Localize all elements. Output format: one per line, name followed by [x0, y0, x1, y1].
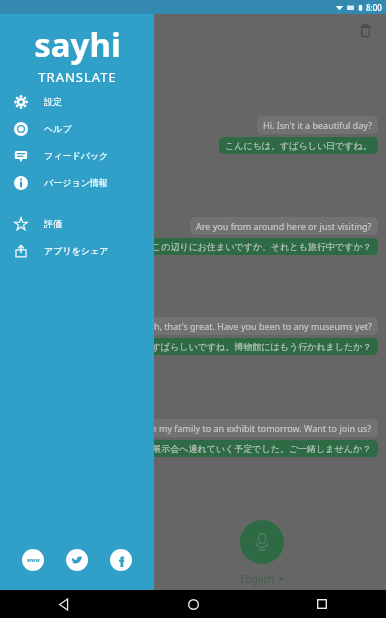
staticText: 族を展示会へ連れていく予定でした。ご一緒しませんか？	[134, 443, 372, 454]
staticText: 8:00	[366, 2, 382, 13]
button[interactable]: Are you from around here or just visitin…	[190, 217, 378, 235]
staticText: この辺りにお住まいですか、それとも旅行中ですか？	[152, 241, 372, 252]
staticText: ng to take my family to an exhibit tomor…	[114, 422, 372, 434]
staticText: www	[27, 557, 40, 564]
button[interactable]: 族を展示会へ連れていく予定でした。ご一緒しませんか？	[128, 440, 378, 457]
button[interactable]: Oh, that's great. Have you been to any m…	[141, 317, 378, 335]
button[interactable]: Website	[22, 549, 44, 571]
button[interactable]: Recents	[310, 592, 334, 616]
staticText: 日本語 – ENGLISH	[56, 54, 119, 64]
button[interactable]: ヘルプ	[0, 115, 154, 142]
staticText: Hi. Isn't it a beautiful day?	[263, 119, 372, 131]
button[interactable]: Delete conversation	[352, 17, 378, 43]
staticText: フィードバック	[44, 150, 109, 161]
button[interactable]: English	[240, 572, 284, 586]
staticText: Are you from around here or just visitin…	[196, 220, 372, 232]
button[interactable]: この辺りにお住まいですか、それとも旅行中ですか？	[146, 238, 378, 255]
button[interactable]: Twitter	[66, 549, 88, 571]
staticText: ヘルプ	[44, 123, 72, 134]
staticText: sayhi	[34, 22, 121, 67]
staticText: TRANSLATE	[38, 68, 117, 86]
button[interactable]: Home	[181, 592, 205, 616]
button[interactable]: バージョン情報	[0, 169, 154, 196]
button[interactable]: こんにちは。すばらしい日ですね。	[219, 137, 378, 154]
staticText: 評価	[44, 218, 62, 229]
button[interactable]: フィードバック	[0, 142, 154, 169]
button[interactable]: ng to take my family to an exhibit tomor…	[108, 419, 378, 437]
staticText: それはすばらしいですね。博物館にはもう行かれましたか？	[124, 341, 372, 352]
staticText: バージョン情報	[44, 177, 108, 188]
button[interactable]: それはすばらしいですね。博物館にはもう行かれましたか？	[118, 338, 378, 355]
button[interactable]: 設定	[0, 88, 154, 115]
button[interactable]: 評価	[0, 210, 154, 237]
staticText: こんにちは。すばらしい日ですね。	[225, 140, 372, 151]
staticText: 設定	[44, 96, 62, 107]
staticText: English	[240, 572, 275, 586]
button[interactable]: アプリをシェア	[0, 237, 154, 264]
staticText: Oh, that's great. Have you been to any m…	[147, 320, 372, 332]
button[interactable]: Hi. Isn't it a beautiful day?	[257, 116, 378, 134]
button[interactable]: Back	[52, 592, 76, 616]
button[interactable]: Facebook	[110, 549, 132, 571]
button[interactable]: Speak	[240, 520, 284, 564]
staticText: アプリをシェア	[44, 245, 109, 256]
